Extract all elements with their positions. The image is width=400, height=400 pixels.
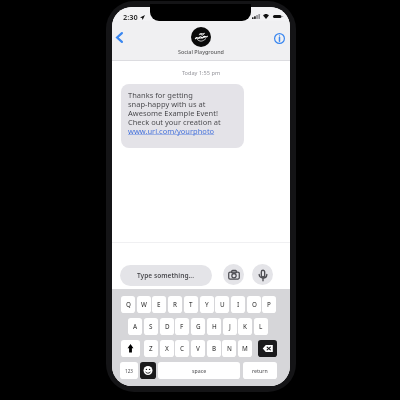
staticText: Y [205,300,209,309]
staticText: Z [149,344,153,353]
button[interactable]: R [168,296,182,313]
button[interactable]: Social Playground [178,27,224,55]
staticText: J [229,322,231,331]
button[interactable]: Backspace [258,340,277,357]
button[interactable]: F [175,318,189,335]
staticText: G [196,322,201,331]
button[interactable]: G [191,318,205,335]
button[interactable]: K [238,318,252,335]
button[interactable]: P [262,296,276,313]
button[interactable]: O [247,296,261,313]
staticText: Type something... [137,271,194,280]
button[interactable]: W [137,296,151,313]
staticText: M [242,344,248,353]
button[interactable]: Q [121,296,135,313]
button[interactable]: Shift [121,340,140,357]
button[interactable]: I [231,296,245,313]
staticText: return [252,367,268,374]
button[interactable]: T [184,296,198,313]
button[interactable]: Thanks for getting snap-happy with us at… [121,84,244,148]
button[interactable]: Y [200,296,214,313]
button[interactable]: S [144,318,158,335]
staticText: R [173,300,177,309]
staticText: A [133,322,138,331]
staticText: W [141,300,147,309]
staticText: T [189,300,193,309]
staticText: space [192,367,207,374]
staticText: I [237,300,240,309]
button[interactable]: M [238,340,252,357]
button[interactable]: return [243,362,277,379]
staticText: L [259,322,263,331]
staticText: P [267,300,271,309]
staticText: U [220,300,225,309]
staticText: B [212,344,217,353]
button[interactable]: U [215,296,229,313]
staticText: D [165,322,170,331]
button[interactable]: L [254,318,268,335]
button[interactable]: V [191,340,205,357]
button[interactable]: Type something... [120,265,212,286]
button[interactable]: X [160,340,174,357]
button[interactable]: A [128,318,142,335]
button[interactable]: J [223,318,237,335]
button[interactable]: E [152,296,166,313]
button[interactable]: H [207,318,221,335]
staticText: Today 1:55 pm [112,69,290,77]
staticText: Social Playground [178,48,224,55]
staticText: F [180,322,184,331]
staticText: X [165,344,169,353]
button[interactable]: C [175,340,189,357]
staticText: 123 [125,368,133,374]
staticText: Q [126,300,131,309]
button[interactable]: Camera [223,264,244,285]
button[interactable]: space [158,362,240,379]
staticText: K [243,322,247,331]
staticText: H [212,322,217,331]
staticText: C [180,344,184,353]
button[interactable]: D [160,318,174,335]
staticText: N [227,344,232,353]
button[interactable]: N [222,340,236,357]
button[interactable]: Z [144,340,158,357]
staticText: S [149,322,153,331]
button[interactable]: Microphone [252,264,273,285]
button[interactable]: B [207,340,221,357]
staticText: O [252,300,257,309]
button[interactable]: 123 [120,362,138,379]
staticText: 2:30 [123,12,138,22]
button[interactable]: Back [112,28,129,47]
staticText: Thanks for getting snap-happy with us at… [128,90,221,136]
button[interactable]: Conversation info [270,29,289,48]
staticText: E [157,300,161,309]
button[interactable]: Emoji [140,362,156,379]
staticText: V [196,344,200,353]
